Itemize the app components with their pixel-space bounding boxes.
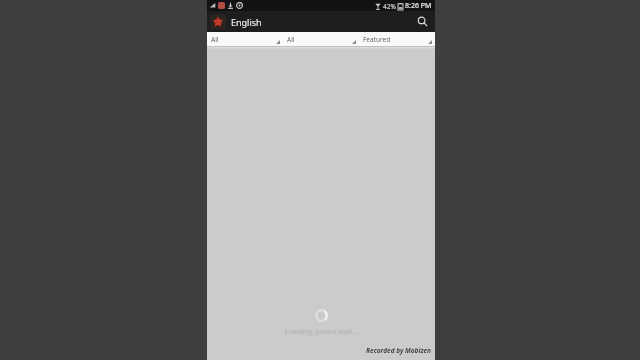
button[interactable]: Featured <box>359 32 435 46</box>
staticText: 8:26 PM <box>405 1 432 11</box>
button[interactable]: All <box>207 32 283 46</box>
staticText: All <box>211 35 219 44</box>
button[interactable]: All <box>283 32 359 46</box>
button[interactable]: English <box>231 16 262 28</box>
staticText: 42% <box>383 2 396 11</box>
button[interactable]: App icon <box>210 14 226 30</box>
button[interactable]: Search <box>412 11 433 32</box>
staticText: Featured <box>363 35 391 44</box>
staticText: All <box>287 35 295 44</box>
staticText: Recorded by Mobizen <box>366 346 431 355</box>
staticText: Loading, please wait... <box>285 327 358 337</box>
